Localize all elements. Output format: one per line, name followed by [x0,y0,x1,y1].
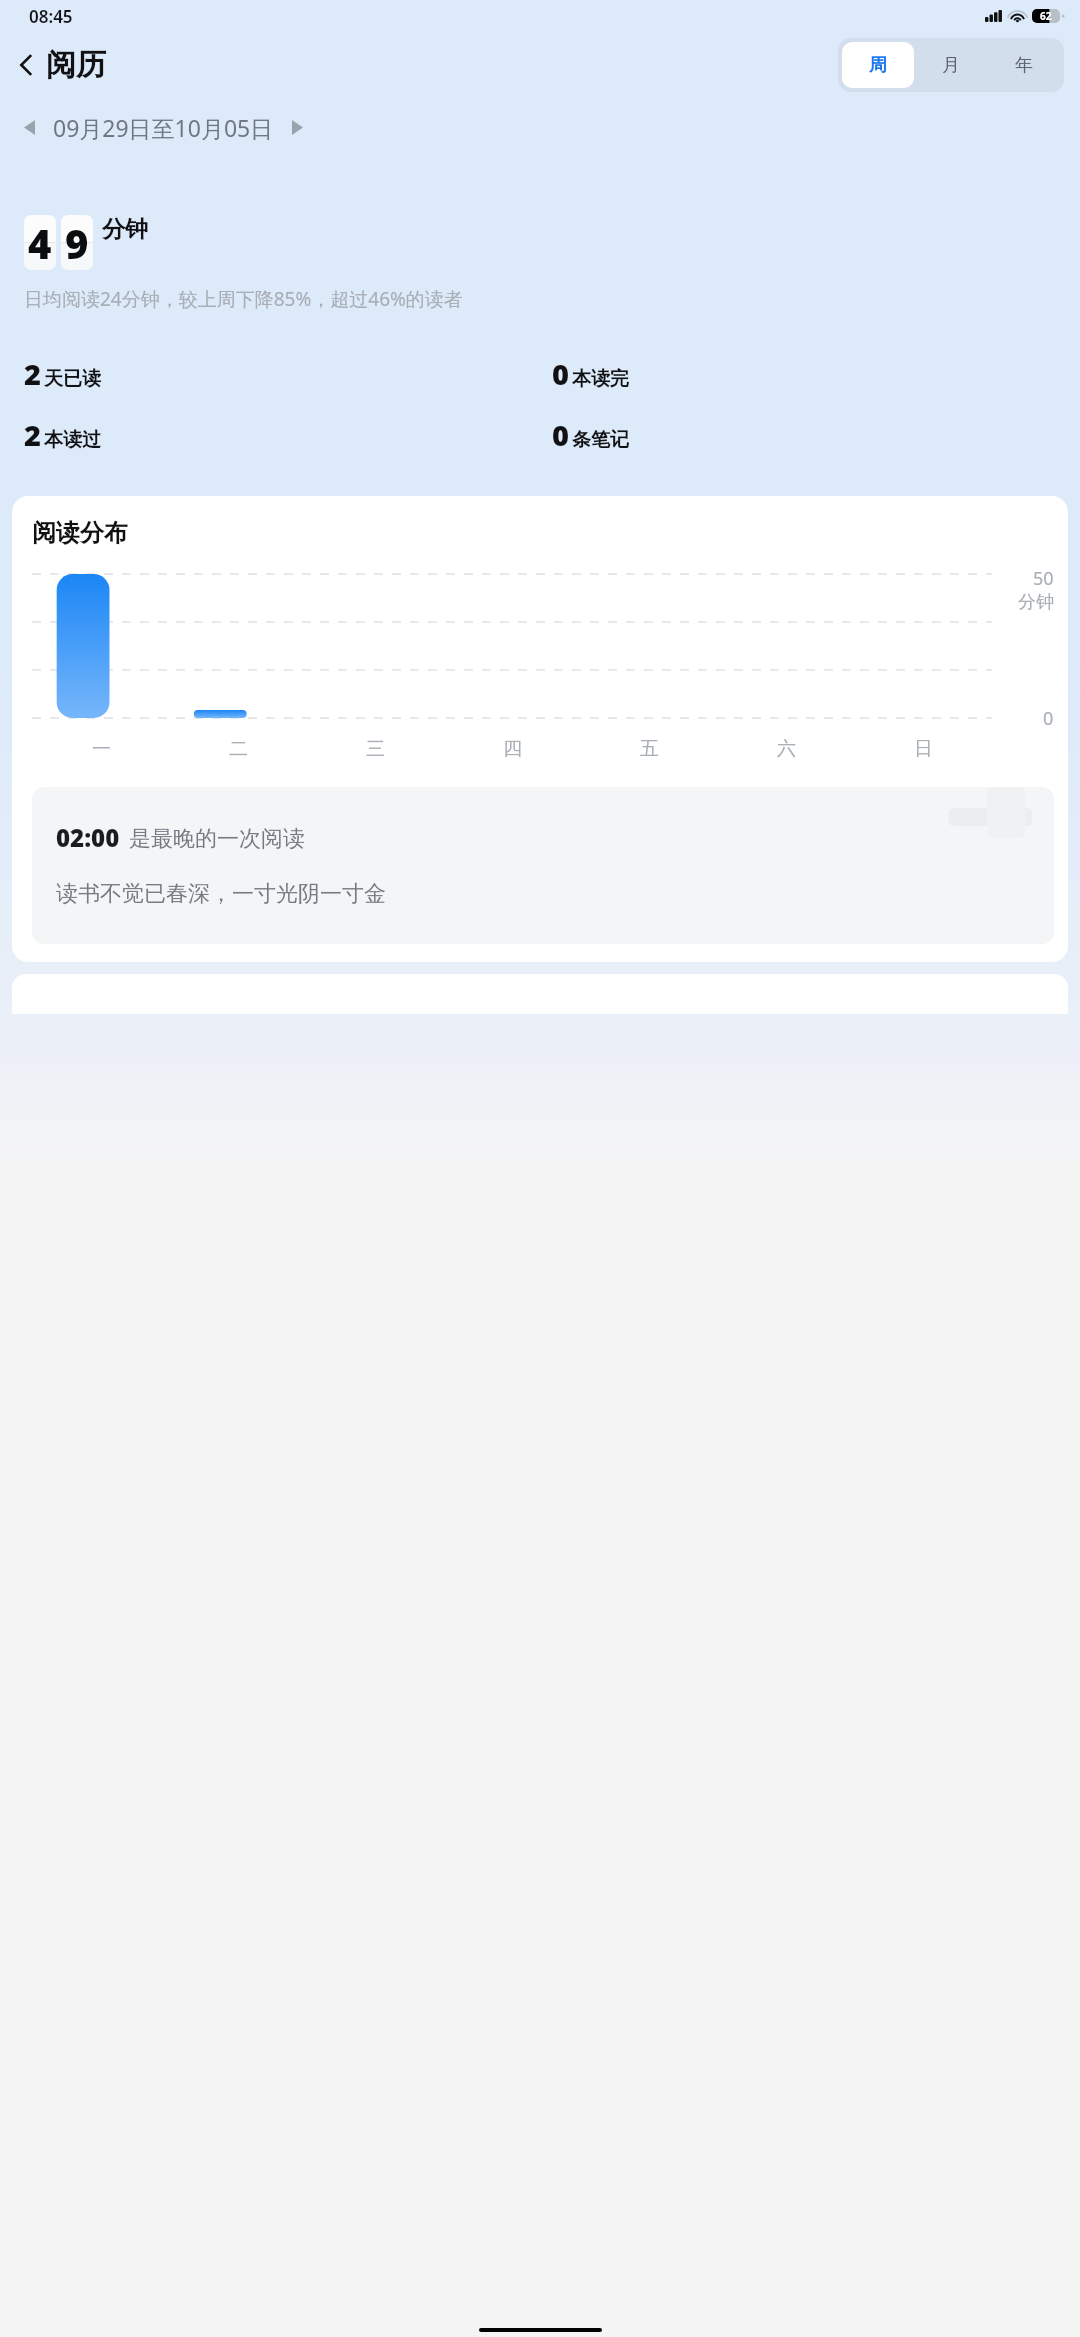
staticText: 周 [869,54,887,77]
staticText: 2 [24,354,41,393]
button[interactable]: 月 [914,42,987,88]
staticText: 0 [1043,706,1054,731]
staticText: 年 [1015,54,1033,77]
button[interactable]: 周 [842,42,914,88]
staticText: 62 [1040,9,1052,23]
button[interactable]: 0 [552,354,1080,393]
staticText: 一 [92,737,111,761]
button[interactable]: Back [14,40,112,90]
staticText: 读书不觉已春深，一寸光阴一寸金 [56,880,386,908]
button[interactable]: 2 [24,354,552,393]
staticText: 09月29日至10月05日 [53,112,274,143]
button[interactable]: 2 [24,415,552,454]
button[interactable]: 02:00 [32,787,1054,944]
staticText: 条笔记 [572,428,629,452]
staticText: 日 [914,737,933,761]
staticText: 二 [229,737,248,761]
button[interactable]: 0 [552,415,1080,454]
staticText: 4 [28,216,52,270]
staticText: 08:45 [29,5,73,28]
staticText: 本读完 [572,367,629,391]
button[interactable]: Previous week [18,114,41,141]
button[interactable]: 年 [987,42,1060,88]
staticText: 是最晚的一次阅读 [129,825,305,853]
staticText: 50 [1033,566,1054,591]
staticText: 月 [942,54,960,77]
button[interactable]: Next week [286,114,309,141]
staticText: 0 [552,415,569,454]
staticText: 阅读分布 [32,518,128,548]
staticText: 日均阅读24分钟，较上周下降85%，超过46%的读者 [24,286,463,312]
staticText: 9 [65,216,89,270]
staticText: 六 [777,737,796,761]
staticText: 分钟 [102,215,148,244]
staticText: 本读过 [44,428,101,452]
staticText: 阅历 [46,46,106,84]
staticText: 三 [366,737,385,761]
staticText: 天已读 [44,367,101,391]
staticText: 02:00 [56,821,120,854]
staticText: 0 [552,354,569,393]
staticText: 五 [640,737,659,761]
staticText: 分钟 [1018,591,1054,614]
staticText: 2 [24,415,41,454]
staticText: 四 [503,737,522,761]
